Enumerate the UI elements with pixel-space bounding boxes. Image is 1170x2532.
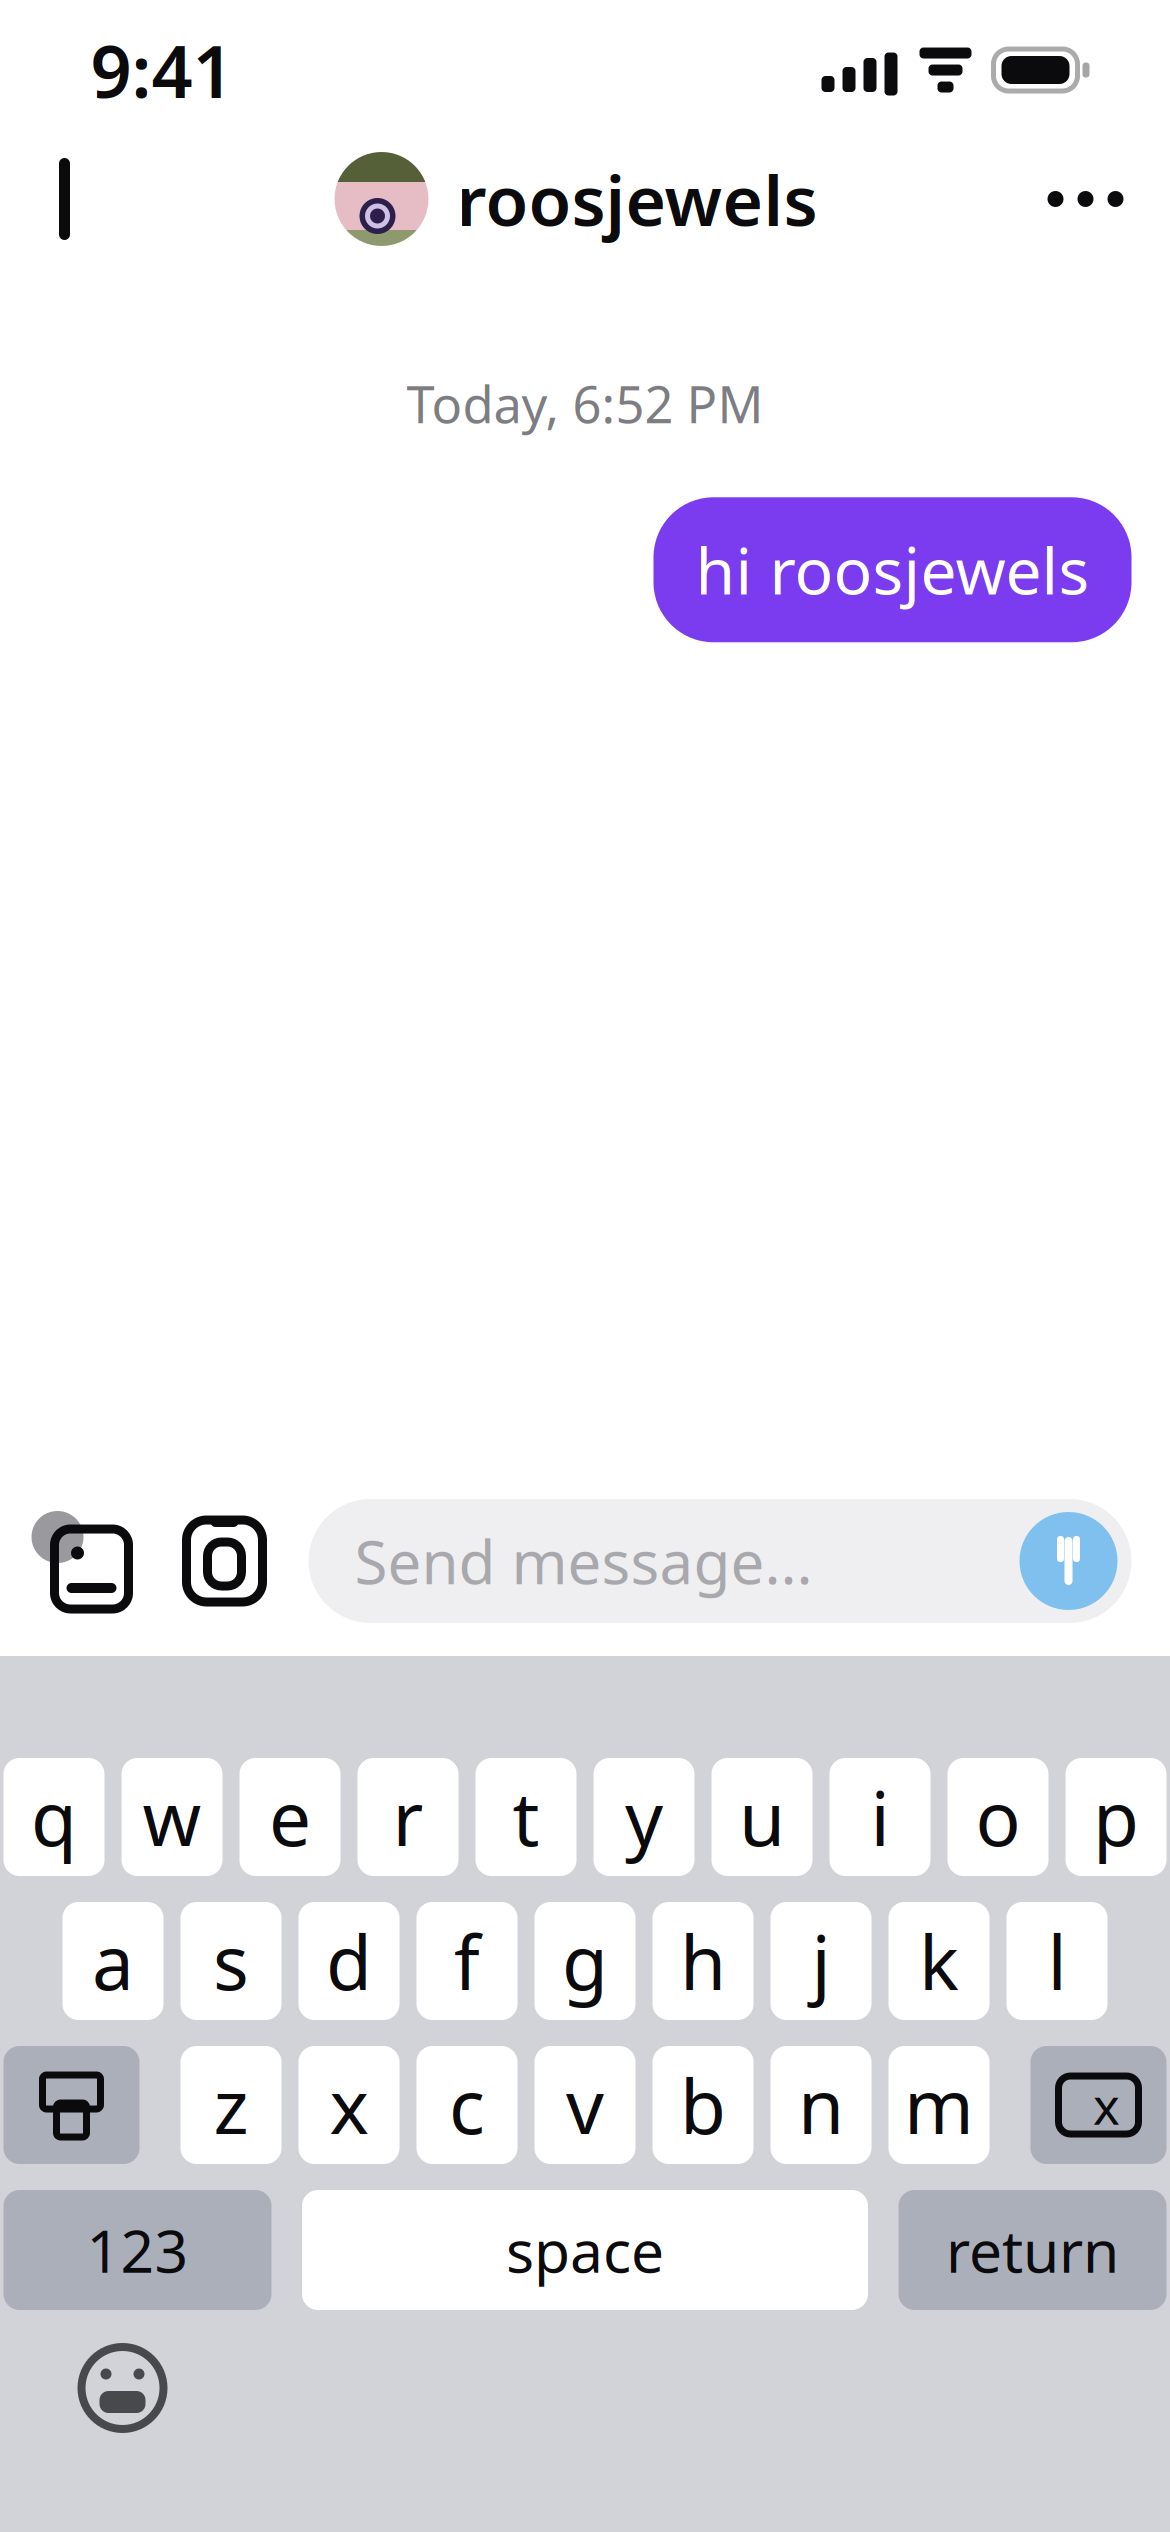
staticText: e	[269, 1767, 311, 1867]
staticText: roosjewels	[456, 153, 817, 245]
button[interactable]: b	[652, 2046, 753, 2164]
button[interactable]: c	[416, 2046, 517, 2164]
button[interactable]: p	[1065, 1758, 1166, 1876]
staticText: b	[680, 2055, 726, 2155]
staticText: x	[1093, 2071, 1120, 2139]
staticText: Today, 6:52 PM	[406, 370, 763, 437]
button[interactable]: More options	[1027, 141, 1143, 257]
button[interactable]: d	[298, 1902, 399, 2020]
button[interactable]: e	[239, 1758, 340, 1876]
button[interactable]: Shift	[3, 2046, 139, 2164]
button[interactable]: h	[652, 1902, 753, 2020]
staticText: space	[506, 2211, 664, 2289]
button[interactable]: t	[475, 1758, 576, 1876]
staticText: k	[919, 1911, 959, 2011]
button[interactable]: q	[3, 1758, 104, 1876]
button[interactable]: i	[829, 1758, 930, 1876]
staticText: z	[213, 2055, 248, 2155]
staticText: hi roosjewels	[695, 527, 1089, 612]
button[interactable]: return	[898, 2190, 1166, 2310]
button[interactable]: 123	[3, 2190, 271, 2310]
staticText: w	[142, 1767, 201, 1867]
button[interactable]: Photo library	[20, 1499, 144, 1623]
button[interactable]: f	[416, 1902, 517, 2020]
staticText: u	[739, 1767, 785, 1867]
staticText: p	[1093, 1767, 1139, 1867]
button[interactable]: u	[711, 1758, 812, 1876]
staticText: v	[566, 2055, 604, 2155]
staticText: m	[904, 2055, 974, 2155]
button[interactable]: l	[1006, 1902, 1107, 2020]
staticText: j	[811, 1911, 830, 2011]
staticText: g	[562, 1911, 608, 2011]
button[interactable]: Delete	[1030, 2046, 1166, 2164]
button[interactable]: Back	[8, 141, 124, 257]
button[interactable]: roosjewels	[334, 152, 817, 246]
button[interactable]: Camera	[162, 1499, 286, 1623]
button[interactable]: m	[888, 2046, 989, 2164]
button[interactable]: n	[770, 2046, 871, 2164]
staticText: l	[1047, 1911, 1066, 2011]
button[interactable]: z	[180, 2046, 281, 2164]
button[interactable]: o	[947, 1758, 1048, 1876]
staticText: d	[326, 1911, 372, 2011]
staticText: h	[680, 1911, 726, 2011]
button[interactable]: Emoji keyboard	[62, 2328, 182, 2448]
staticText: s	[213, 1911, 249, 2011]
button[interactable]: a	[62, 1902, 163, 2020]
staticText: 123	[86, 2211, 188, 2289]
staticText: a	[92, 1911, 134, 2011]
button[interactable]: space	[302, 2190, 868, 2310]
staticText: Send message...	[354, 1521, 812, 1601]
staticText: n	[798, 2055, 844, 2155]
staticText: f	[454, 1911, 480, 2011]
staticText: x	[329, 2055, 368, 2155]
button[interactable]: k	[888, 1902, 989, 2020]
staticText: c	[449, 2055, 485, 2155]
button[interactable]: w	[121, 1758, 222, 1876]
button[interactable]: x	[298, 2046, 399, 2164]
staticText: r	[392, 1767, 423, 1867]
staticText: 9:41	[90, 22, 233, 118]
button[interactable]: s	[180, 1902, 281, 2020]
staticText: i	[870, 1767, 889, 1867]
button[interactable]: g	[534, 1902, 635, 2020]
button[interactable]: j	[770, 1902, 871, 2020]
staticText: o	[975, 1767, 1020, 1867]
button[interactable]: Send message...	[308, 1499, 1131, 1623]
staticText: return	[946, 2211, 1119, 2289]
button[interactable]: r	[357, 1758, 458, 1876]
staticText: t	[512, 1767, 539, 1867]
staticText: q	[31, 1767, 77, 1867]
button[interactable]: y	[593, 1758, 694, 1876]
button[interactable]: v	[534, 2046, 635, 2164]
staticText: y	[625, 1767, 663, 1867]
